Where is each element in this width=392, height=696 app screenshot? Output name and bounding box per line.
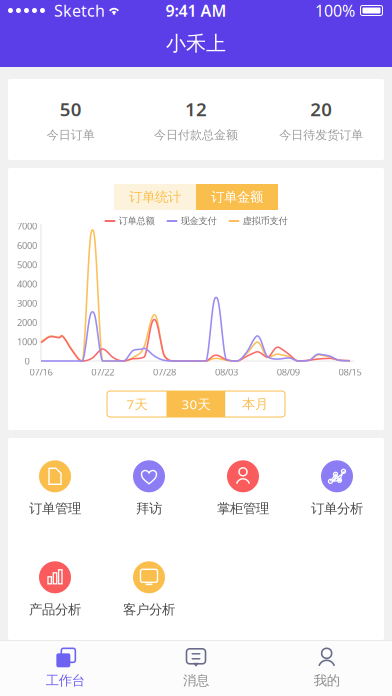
button[interactable]: 30天 — [166, 391, 225, 417]
button[interactable]: 拜访 — [102, 438, 196, 539]
staticText: 虚拟币支付 — [242, 215, 287, 227]
staticText: 客户分析 — [123, 601, 175, 618]
button[interactable]: 50 — [8, 78, 133, 160]
staticText: 订单金额 — [211, 189, 263, 205]
button[interactable]: 工作台 — [0, 640, 131, 696]
button[interactable]: 12 — [133, 78, 259, 160]
staticText: 100% — [315, 0, 355, 21]
staticText: 6000 — [17, 239, 37, 251]
staticText: 订单统计 — [129, 189, 181, 205]
staticText: 7天 — [126, 395, 147, 413]
staticText: 订单管理 — [29, 500, 81, 517]
staticText: 3000 — [17, 297, 37, 309]
staticText: 今日待发货订单 — [279, 127, 363, 142]
staticText: 掌柜管理 — [217, 500, 269, 517]
staticText: 9:41 AM — [165, 0, 226, 21]
staticText: 产品分析 — [29, 601, 81, 618]
button[interactable]: 产品分析 — [8, 539, 102, 640]
staticText: 2000 — [17, 316, 37, 329]
staticText: 订单分析 — [311, 500, 363, 517]
staticText: 消息 — [183, 672, 209, 689]
staticText: 4000 — [17, 278, 37, 290]
staticText: 1000 — [17, 335, 37, 348]
staticText: 本月 — [242, 396, 268, 412]
staticText: 小禾上 — [166, 31, 226, 56]
staticText: 20 — [310, 97, 332, 121]
staticText: 30天 — [181, 395, 210, 413]
staticText: 订单总额 — [118, 215, 154, 227]
button[interactable]: 掌柜管理 — [196, 438, 290, 539]
button[interactable]: 订单统计 — [114, 184, 196, 210]
button[interactable]: 订单金额 — [196, 184, 278, 210]
staticText: 7000 — [17, 220, 37, 232]
staticText: 我的 — [314, 672, 340, 689]
staticText: 今日付款总金额 — [154, 127, 238, 142]
staticText: 08/15 — [338, 366, 361, 378]
button[interactable]: 我的 — [261, 640, 392, 696]
button[interactable]: 消息 — [131, 640, 261, 696]
staticText: 5000 — [17, 258, 37, 271]
staticText: 12 — [185, 97, 207, 121]
staticText: 0 — [24, 355, 29, 367]
staticText: 今日订单 — [47, 127, 95, 142]
button[interactable]: 20 — [259, 78, 384, 160]
button[interactable]: 客户分析 — [102, 539, 196, 640]
staticText: 07/16 — [29, 366, 52, 378]
button[interactable]: 订单管理 — [8, 438, 102, 539]
staticText: 拜访 — [136, 500, 162, 517]
staticText: 07/22 — [91, 366, 114, 378]
button[interactable]: 本月 — [225, 391, 284, 417]
staticText: 08/09 — [277, 366, 300, 378]
staticText: 工作台 — [46, 672, 85, 689]
staticText: 08/03 — [215, 366, 238, 378]
button[interactable]: 订单分析 — [290, 438, 384, 539]
button[interactable]: 7天 — [107, 391, 166, 417]
staticText: 07/28 — [153, 366, 176, 378]
staticText: 50 — [60, 97, 82, 121]
staticText: Sketch — [54, 0, 105, 21]
staticText: 现金支付 — [180, 215, 216, 227]
